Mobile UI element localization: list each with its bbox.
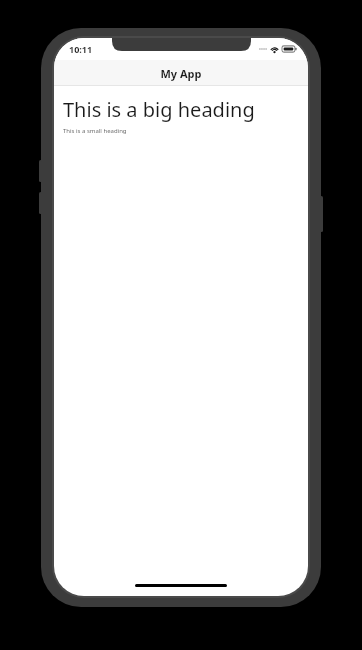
staticText: 10:11 bbox=[69, 43, 93, 55]
staticText: This is a small heading bbox=[63, 127, 127, 135]
other: Wi-Fi bbox=[270, 46, 279, 53]
button[interactable]: My App bbox=[54, 60, 308, 86]
staticText: This is a big heading bbox=[63, 96, 255, 123]
staticText: My App bbox=[160, 66, 202, 81]
other: Cellular signal bbox=[259, 46, 267, 52]
other: Battery bbox=[282, 45, 297, 53]
